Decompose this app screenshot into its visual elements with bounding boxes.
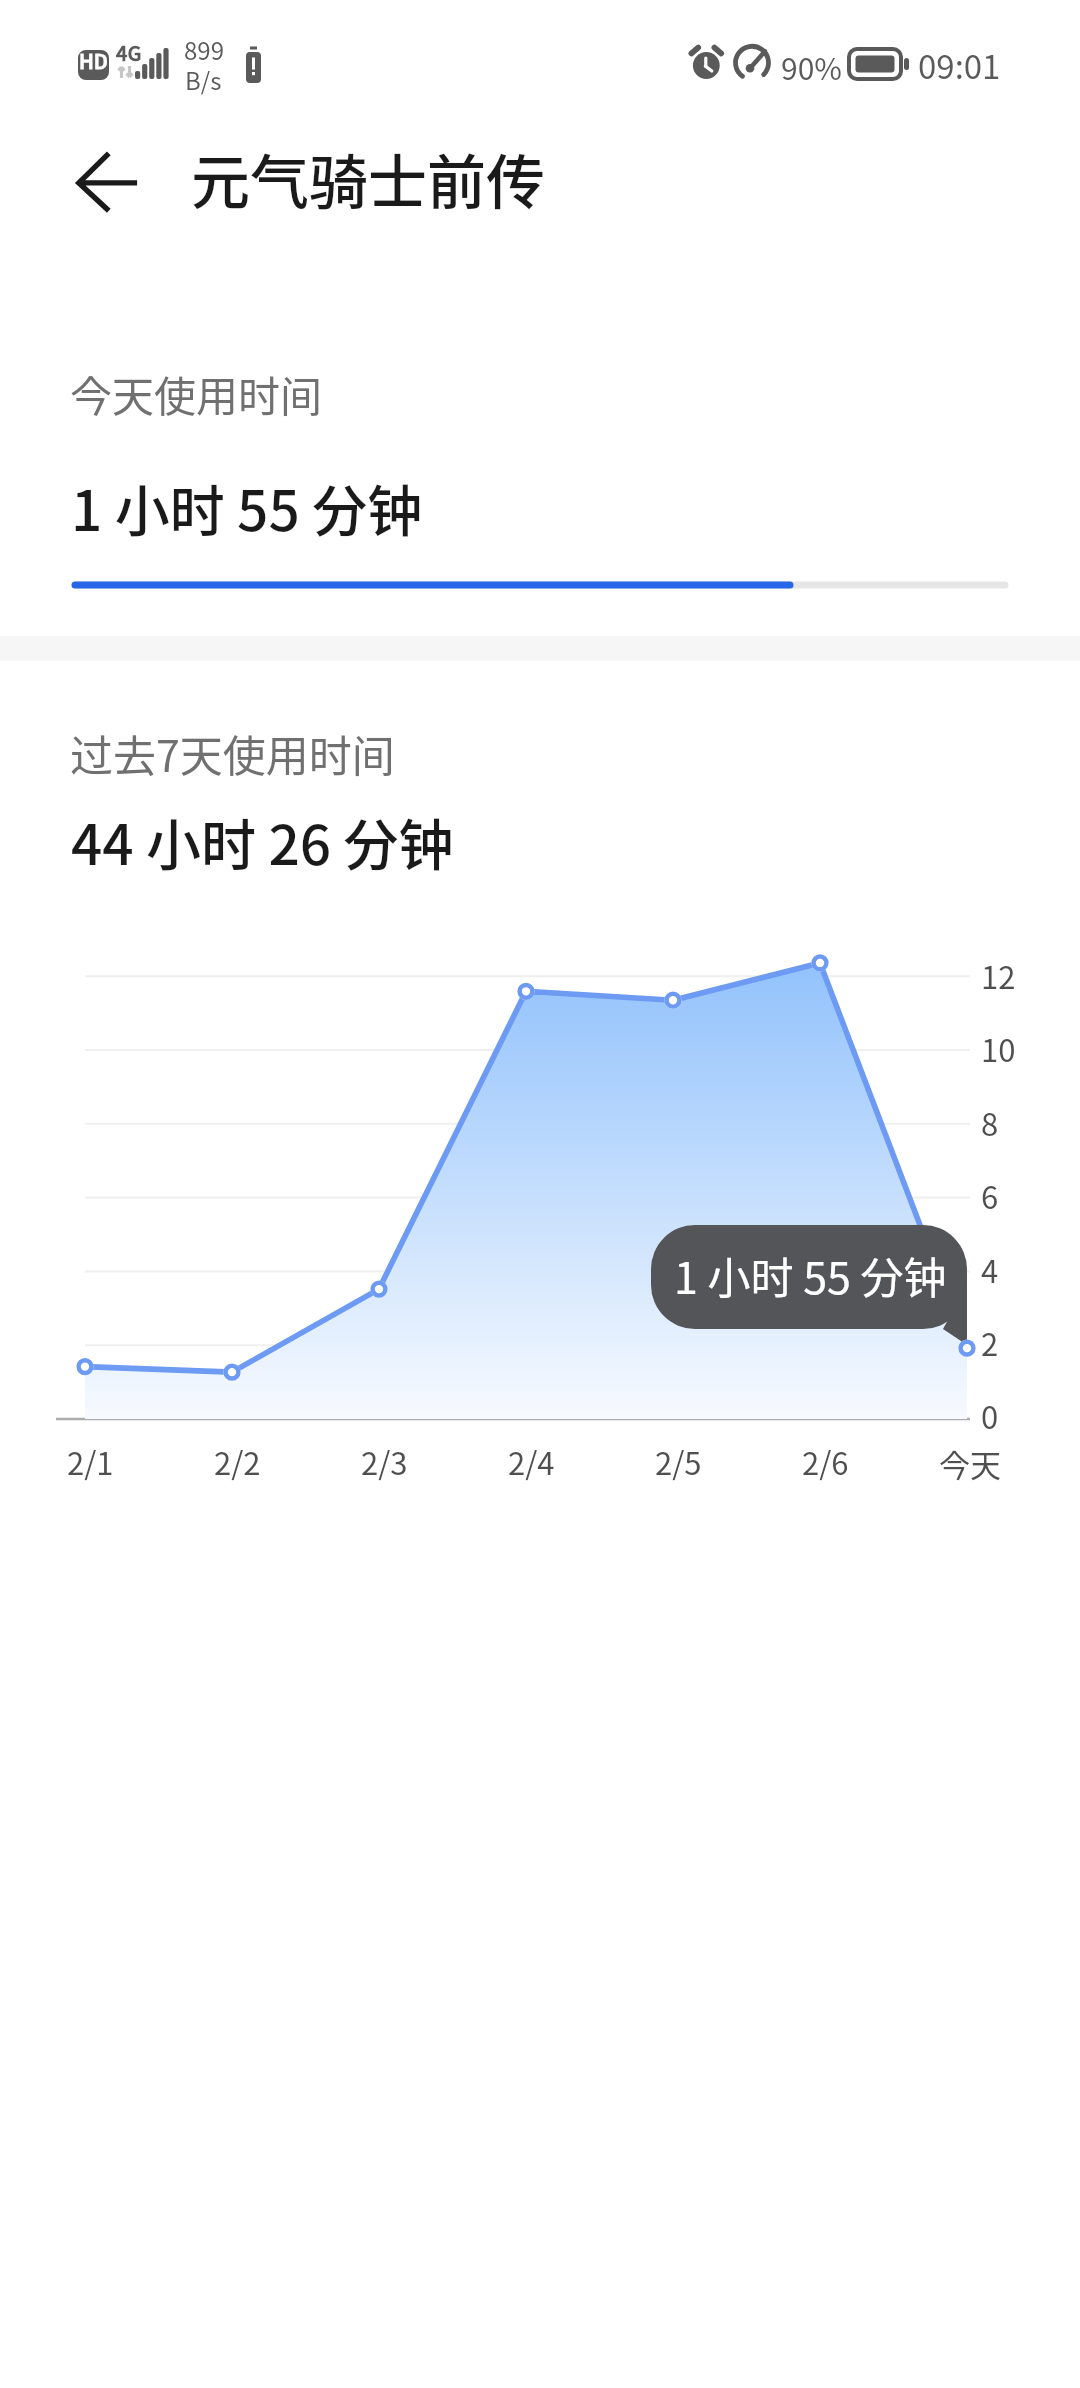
staticText: 90% [781,45,842,88]
staticText: 2/4 [508,1439,555,1484]
staticText: 10 [981,1026,1016,1071]
staticText: 2/2 [214,1439,261,1484]
staticText: 2/5 [655,1439,702,1484]
staticText: 过去7天使用时间 [70,722,395,784]
staticText: 44 小时 26 分钟 [71,801,454,881]
staticText: 1 小时 55 分钟 [71,467,423,547]
staticText: 元气骑士前传 [191,136,546,221]
staticText: 8 [981,1100,999,1145]
staticText: B/s [185,62,222,97]
staticText: 今天 [939,1441,1001,1486]
staticText: 0 [981,1393,999,1438]
staticText: 2/3 [361,1439,408,1484]
staticText: 2/6 [802,1439,849,1484]
staticText: 4G [116,38,142,67]
staticText: 09:01 [918,41,1001,89]
staticText: 今天使用时间 [70,363,323,424]
staticText: HD [79,46,108,75]
button[interactable]: Back [54,134,150,230]
staticText: 899 [184,32,224,67]
staticText: 12 [981,953,1016,998]
staticText: 2/1 [67,1439,114,1484]
staticText: 2 [981,1320,999,1365]
staticText: 6 [981,1173,999,1218]
staticText: 1 小时 55 分钟 [674,1244,947,1306]
staticText: 4 [981,1247,999,1292]
